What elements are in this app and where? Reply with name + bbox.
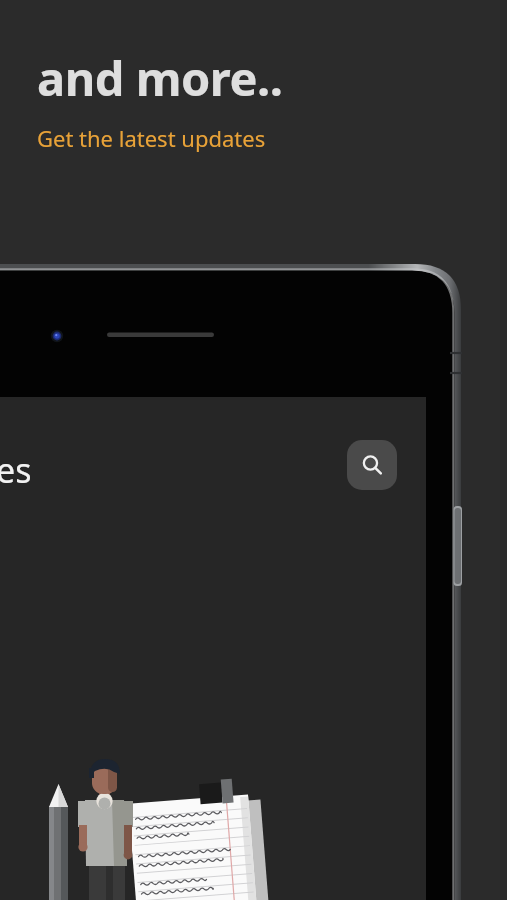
staticText: es (0, 447, 32, 493)
staticText: and more.. (37, 46, 283, 110)
staticText: Get the latest updates (37, 123, 266, 153)
button[interactable]: Search (347, 440, 397, 490)
